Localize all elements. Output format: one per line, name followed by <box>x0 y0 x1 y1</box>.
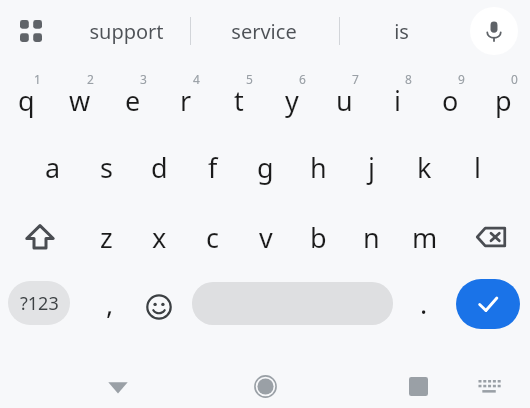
button[interactable]: g <box>239 132 292 202</box>
staticText: h <box>310 149 327 186</box>
button[interactable]: l <box>451 132 504 202</box>
button[interactable]: i <box>371 62 424 132</box>
staticText: t <box>234 82 244 119</box>
button[interactable]: Recent apps <box>382 365 454 408</box>
button[interactable]: k <box>398 132 451 202</box>
button[interactable]: Emoji <box>134 272 184 342</box>
staticText: is <box>394 18 409 45</box>
staticText: b <box>310 219 327 256</box>
staticText: 7 <box>352 71 359 87</box>
button[interactable]: m <box>398 202 451 272</box>
staticText: k <box>417 149 432 186</box>
button[interactable]: support <box>82 0 170 62</box>
staticText: f <box>208 149 218 186</box>
button[interactable]: Voice input <box>470 7 518 55</box>
staticText: 0 <box>511 71 518 87</box>
staticText: x <box>152 219 167 256</box>
button[interactable]: Shift <box>0 202 79 272</box>
button[interactable]: , <box>82 272 138 342</box>
button[interactable]: . <box>398 272 450 342</box>
staticText: g <box>257 149 274 186</box>
button[interactable]: is <box>370 0 432 62</box>
button[interactable]: b <box>292 202 345 272</box>
button[interactable]: j <box>345 132 398 202</box>
button[interactable]: Apps <box>8 8 54 54</box>
button[interactable]: Space <box>192 282 393 325</box>
staticText: 4 <box>193 71 200 87</box>
staticText: 6 <box>299 71 306 87</box>
staticText: service <box>231 18 297 45</box>
staticText: j <box>368 149 375 186</box>
button[interactable]: d <box>133 132 186 202</box>
staticText: w <box>69 82 91 119</box>
button[interactable]: Back <box>82 365 154 408</box>
staticText: 2 <box>87 71 94 87</box>
staticText: c <box>206 219 219 256</box>
staticText: y <box>285 82 299 119</box>
staticText: r <box>180 82 192 119</box>
button[interactable]: o <box>424 62 477 132</box>
staticText: . <box>420 285 428 322</box>
staticText: 5 <box>246 71 253 87</box>
button[interactable]: n <box>345 202 398 272</box>
button[interactable]: w <box>53 62 106 132</box>
staticText: a <box>45 149 61 186</box>
button[interactable]: Home <box>229 365 301 408</box>
button[interactable]: c <box>186 202 239 272</box>
staticText: 9 <box>458 71 465 87</box>
staticText: d <box>151 149 168 186</box>
button[interactable]: x <box>133 202 186 272</box>
staticText: s <box>100 149 113 186</box>
staticText: m <box>412 219 438 256</box>
button[interactable]: ?123 <box>8 281 70 325</box>
button[interactable]: s <box>80 132 133 202</box>
button[interactable]: h <box>292 132 345 202</box>
staticText: o <box>442 82 459 119</box>
staticText: 1 <box>34 71 41 87</box>
button[interactable]: a <box>26 132 80 202</box>
staticText: i <box>394 82 401 119</box>
staticText: n <box>363 219 380 256</box>
staticText: z <box>100 219 113 256</box>
button[interactable]: y <box>265 62 318 132</box>
staticText: p <box>495 82 512 119</box>
button[interactable]: u <box>318 62 371 132</box>
button[interactable]: p <box>477 62 530 132</box>
button[interactable]: z <box>79 202 133 272</box>
button[interactable]: t <box>212 62 265 132</box>
button[interactable]: e <box>106 62 159 132</box>
staticText: support <box>89 18 164 45</box>
button[interactable]: Switch keyboard <box>464 365 516 408</box>
staticText: q <box>18 82 35 119</box>
button[interactable]: Enter <box>456 279 520 329</box>
staticText: , <box>106 285 114 322</box>
staticText: l <box>474 149 481 186</box>
staticText: 3 <box>140 71 147 87</box>
button[interactable]: v <box>239 202 292 272</box>
staticText: 8 <box>405 71 412 87</box>
button[interactable]: q <box>0 62 53 132</box>
button[interactable]: Backspace <box>451 202 530 272</box>
staticText: ?123 <box>20 291 59 316</box>
staticText: v <box>259 219 273 256</box>
button[interactable]: r <box>159 62 212 132</box>
button[interactable]: f <box>186 132 239 202</box>
staticText: u <box>336 82 353 119</box>
button[interactable]: service <box>222 0 305 62</box>
staticText: e <box>125 82 141 119</box>
